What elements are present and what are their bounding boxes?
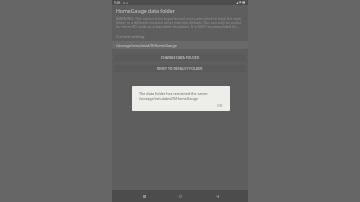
button[interactable]: RESET TO DEFAULT FOLDER (114, 65, 246, 72)
button[interactable]: Recent apps (139, 191, 149, 201)
staticText: OK (217, 103, 223, 108)
button[interactable]: CHANGE DATA FOLDER (114, 54, 246, 61)
staticText: 9:46 (114, 1, 121, 5)
staticText: WARNING: This option is for experienced … (116, 16, 244, 30)
button[interactable]: /storage/emulated/0/HomeGauge (112, 41, 248, 49)
staticText: The data folder has remained the same: /… (139, 91, 208, 101)
staticText: CHANGE DATA FOLDER (161, 55, 199, 60)
button[interactable]: Back (212, 191, 222, 201)
button[interactable]: Home (175, 191, 185, 201)
staticText: RESET TO DEFAULT FOLDER (157, 66, 203, 71)
staticText: /storage/emulated/0/HomeGauge (116, 43, 177, 48)
staticText: Current setting (116, 34, 145, 39)
button[interactable]: OK (214, 102, 226, 109)
staticText: HomeGauge data folder (116, 7, 175, 14)
